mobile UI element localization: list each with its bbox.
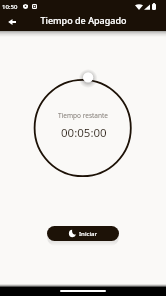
staticText: Tiempo restante: [58, 111, 109, 120]
button[interactable]: Back: [3, 13, 21, 31]
staticText: 00:05:00: [61, 125, 107, 141]
button[interactable]: Iniciar: [47, 226, 119, 241]
staticText: 10:50: [2, 3, 18, 11]
staticText: Iniciar: [79, 230, 98, 238]
staticText: Tiempo de Apagado: [40, 14, 127, 26]
